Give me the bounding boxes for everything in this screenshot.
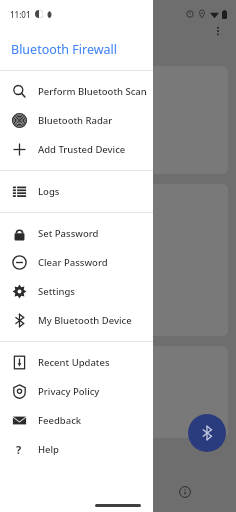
staticText: My Bluetooth Device: [38, 314, 132, 327]
button[interactable]: Recent Updates: [0, 348, 153, 377]
staticText: Feedback: [38, 414, 82, 427]
staticText: ection. Tap: [14, 227, 60, 239]
button[interactable]: Help: [70, 479, 96, 505]
button[interactable]: ?: [0, 435, 153, 464]
button[interactable]: My Bluetooth Device: [0, 306, 153, 335]
button[interactable]: Bluetooth Radar: [0, 106, 153, 135]
button[interactable]: Clear Password: [0, 248, 153, 277]
button[interactable]: Bluetooth scan: [188, 414, 226, 452]
button[interactable]: More options: [208, 21, 228, 41]
button[interactable]: Settings: [0, 277, 153, 306]
button[interactable]: Logs: [0, 177, 153, 206]
staticText: Settings: [38, 285, 75, 298]
staticText: actions: [14, 375, 45, 387]
button[interactable]: Perform Bluetooth Scan: [0, 77, 153, 106]
staticText: Logs: [38, 185, 60, 198]
staticText: Add Trusted Device: [38, 143, 126, 156]
staticText: 11:01: [10, 9, 31, 20]
staticText: ?: [16, 442, 22, 457]
button[interactable]: Privacy Policy: [0, 377, 153, 406]
staticText: Help: [38, 443, 60, 456]
staticText: Bluetooth Radar: [38, 114, 113, 127]
button[interactable]: Info: [172, 479, 198, 505]
staticText: Privacy Policy: [38, 385, 100, 398]
staticText: All bluetooth: [14, 95, 69, 107]
staticText: Recent Updates: [38, 356, 110, 369]
button[interactable]: Add Trusted Device: [0, 135, 153, 164]
staticText: Clear Password: [38, 256, 108, 269]
staticText: Bluetooth Firewall: [11, 41, 117, 58]
staticText: Perform Bluetooth Scan: [38, 85, 147, 98]
staticText: Set Password: [38, 227, 99, 240]
button[interactable]: Set Password: [0, 219, 153, 248]
staticText: device. To: [14, 389, 56, 401]
button[interactable]: Feedback: [0, 406, 153, 435]
staticText: wide option: [14, 109, 64, 121]
